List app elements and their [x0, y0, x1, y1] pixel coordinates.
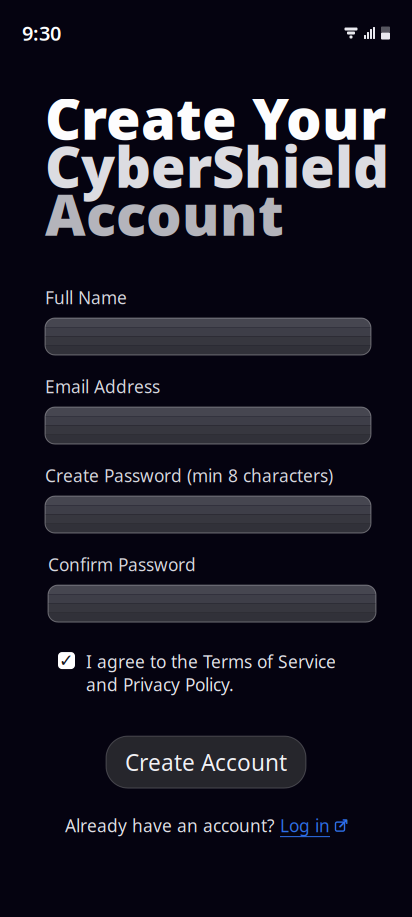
button[interactable] — [48, 585, 376, 622]
staticText: Full Name — [45, 286, 127, 309]
staticText: Confirm Password — [48, 553, 196, 576]
staticText: I agree to the Terms of Service and Priv… — [86, 650, 336, 696]
staticText: Email Address — [45, 375, 160, 398]
staticText: Account — [45, 177, 284, 251]
staticText: Log in — [280, 814, 330, 837]
button[interactable] — [45, 407, 371, 444]
button[interactable] — [45, 496, 371, 533]
staticText: Create Password (min 8 characters) — [45, 464, 333, 487]
staticText: Create Account — [125, 747, 287, 777]
button[interactable] — [45, 318, 371, 355]
button[interactable]: ✓ — [0, 644, 386, 702]
button[interactable]: Log in — [280, 814, 347, 837]
staticText: Already have an account? — [65, 814, 280, 837]
staticText: ✓ — [59, 651, 74, 670]
staticText: ↗ — [337, 815, 349, 832]
button[interactable]: Create Account — [106, 736, 306, 788]
staticText: 9:30 — [22, 20, 61, 46]
staticText: Create Your — [45, 81, 386, 155]
staticText: CyberShield — [45, 129, 389, 203]
